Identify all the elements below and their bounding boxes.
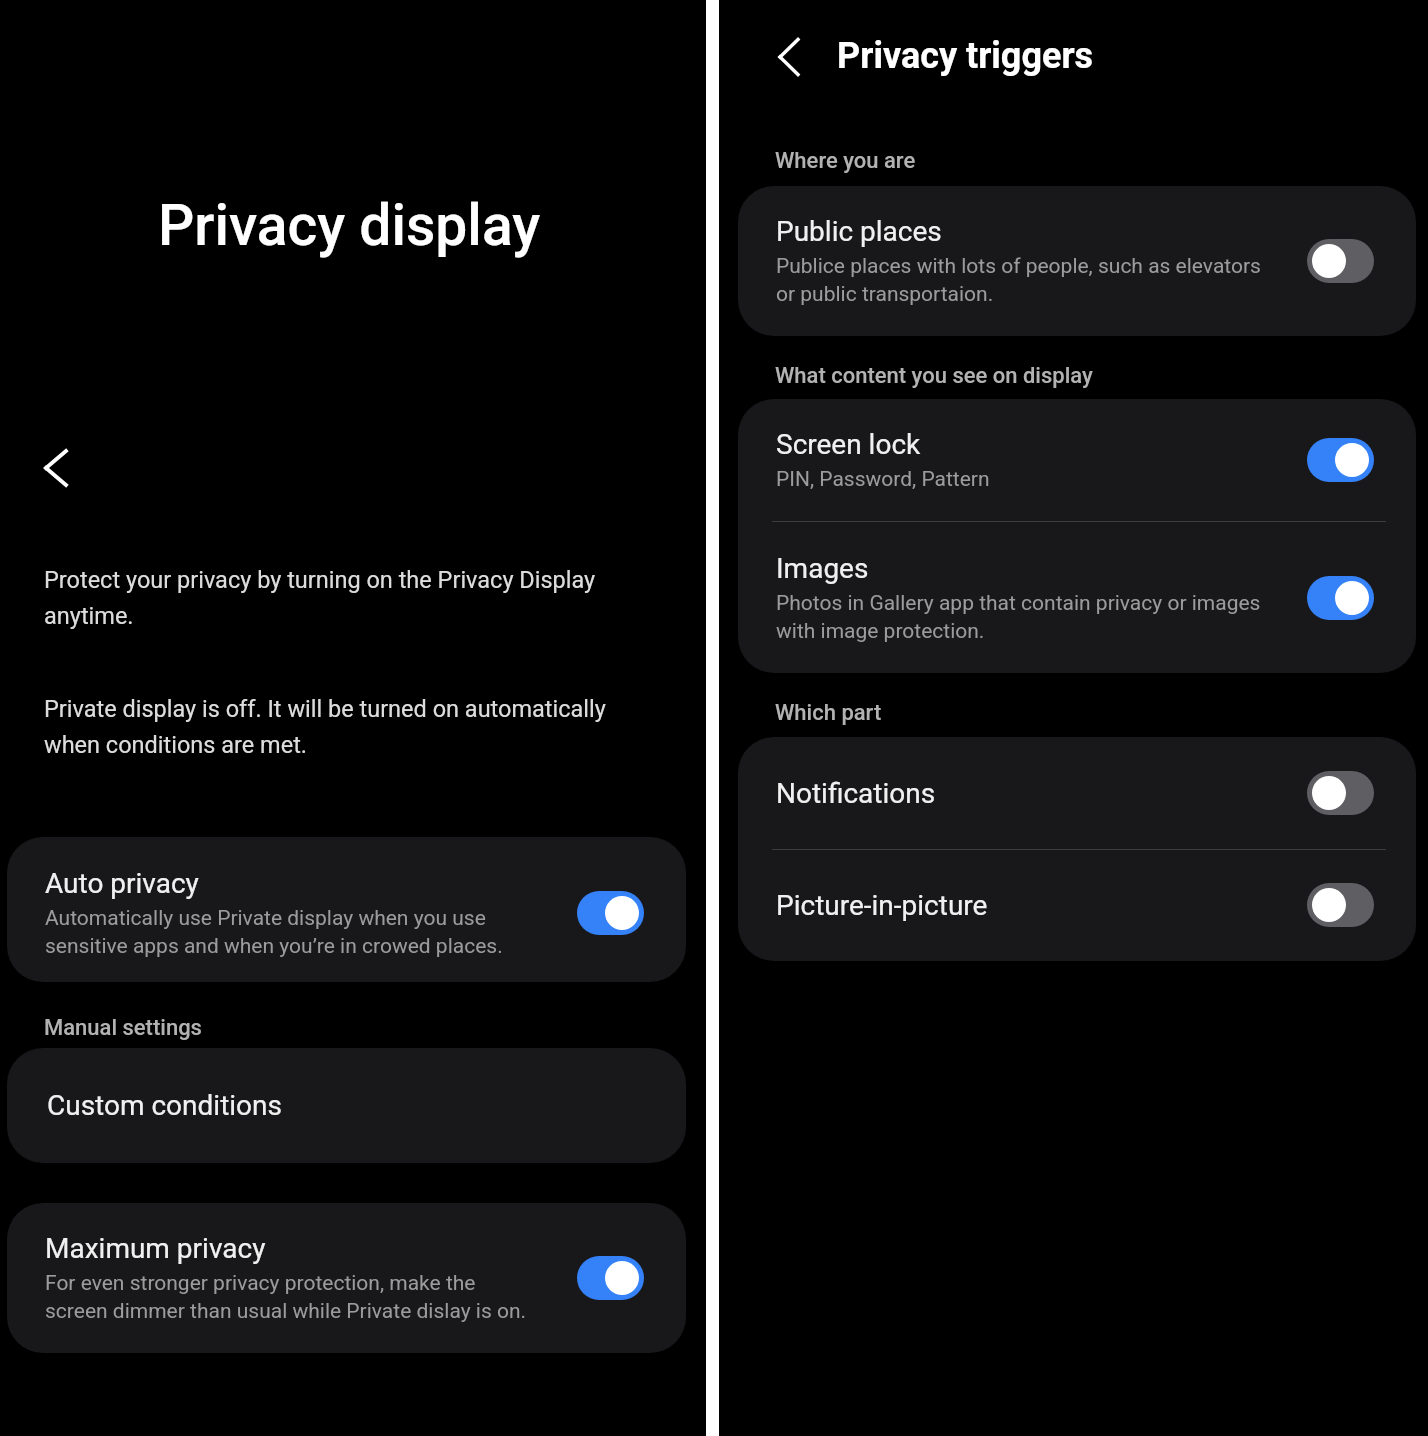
staticText: For even stronger privacy protection, ma…: [45, 1271, 527, 1323]
staticText: Which part: [775, 700, 882, 726]
staticText: Photos in Gallery app that contain priva…: [776, 591, 1261, 643]
staticText: Auto privacy: [45, 867, 199, 900]
staticText: Where you are: [775, 148, 916, 174]
staticText: Picture-in-picture: [776, 889, 988, 922]
button[interactable]: Toggle: [577, 891, 644, 935]
staticText: Privacy triggers: [837, 35, 1094, 77]
staticText: Protect your privacy by turning on the P…: [44, 566, 596, 629]
button[interactable]: Toggle: [1307, 438, 1374, 482]
staticText: PIN, Password, Pattern: [776, 467, 990, 492]
button[interactable]: Screen lock: [738, 399, 1416, 521]
button[interactable]: Toggle: [1307, 576, 1374, 620]
button[interactable]: Public places: [738, 186, 1416, 336]
button[interactable]: Toggle: [1307, 771, 1374, 815]
staticText: Publice places with lots of people, such…: [776, 254, 1261, 306]
button[interactable]: Picture-in-picture: [738, 850, 1416, 961]
button[interactable]: Back: [33, 445, 79, 491]
button[interactable]: Toggle: [1307, 239, 1374, 283]
staticText: Images: [776, 552, 869, 585]
staticText: Screen lock: [776, 428, 921, 461]
button[interactable]: Maximum privacy: [7, 1203, 686, 1353]
staticText: Automatically use Private display when y…: [45, 906, 503, 958]
button[interactable]: Images: [738, 522, 1416, 673]
button[interactable]: Back: [766, 34, 812, 80]
button[interactable]: Custom conditions: [7, 1048, 686, 1163]
staticText: Notifications: [776, 777, 936, 810]
staticText: Manual settings: [44, 1015, 202, 1041]
button[interactable]: Toggle: [577, 1256, 644, 1300]
staticText: Maximum privacy: [45, 1232, 266, 1265]
staticText: What content you see on display: [775, 363, 1093, 389]
button[interactable]: Notifications: [738, 737, 1416, 849]
staticText: Private display is off. It will be turne…: [44, 695, 606, 758]
staticText: Public places: [776, 215, 942, 248]
staticText: Custom conditions: [47, 1089, 283, 1122]
button[interactable]: Toggle: [1307, 883, 1374, 927]
staticText: Privacy display: [0, 192, 702, 259]
button[interactable]: Auto privacy: [7, 837, 686, 982]
